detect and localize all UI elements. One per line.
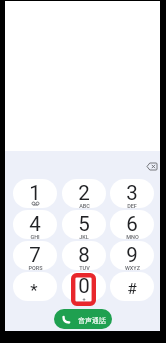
- button[interactable]: 4: [13, 210, 57, 239]
- staticText: 2: [78, 181, 90, 205]
- staticText: 0: [78, 274, 90, 298]
- button[interactable]: 7: [13, 241, 57, 270]
- staticText: 5: [78, 212, 90, 236]
- staticText: 9: [126, 243, 138, 267]
- button[interactable]: 8: [62, 241, 106, 270]
- staticText: MNO: [126, 234, 139, 239]
- button[interactable]: 1: [13, 179, 57, 208]
- button[interactable]: 9: [110, 241, 154, 270]
- staticText: WXYZ: [125, 265, 140, 270]
- staticText: DEF: [127, 203, 137, 208]
- button[interactable]: 6: [110, 210, 154, 239]
- staticText: 7: [29, 243, 41, 267]
- button[interactable]: 2: [62, 179, 106, 208]
- button[interactable]: [142, 158, 161, 175]
- button[interactable]: 5: [62, 210, 106, 239]
- staticText: 3: [126, 181, 138, 205]
- staticText: ABC: [79, 203, 90, 208]
- staticText: 4: [29, 212, 41, 236]
- staticText: 8: [78, 243, 90, 267]
- staticText: 6: [126, 212, 138, 236]
- staticText: +: [82, 296, 86, 301]
- staticText: *: [30, 280, 38, 300]
- staticText: JKL: [79, 234, 89, 239]
- staticText: 音声通話: [78, 316, 106, 325]
- button[interactable]: #: [110, 272, 154, 301]
- button[interactable]: 0: [62, 272, 106, 301]
- button[interactable]: 音声通話: [54, 309, 112, 329]
- button[interactable]: 3: [110, 179, 154, 208]
- button[interactable]: *: [13, 272, 57, 301]
- staticText: TUV: [79, 265, 90, 270]
- staticText: 1: [29, 181, 41, 205]
- staticText: GHI: [30, 234, 40, 239]
- staticText: PQRS: [28, 265, 43, 270]
- staticText: #: [127, 280, 137, 298]
